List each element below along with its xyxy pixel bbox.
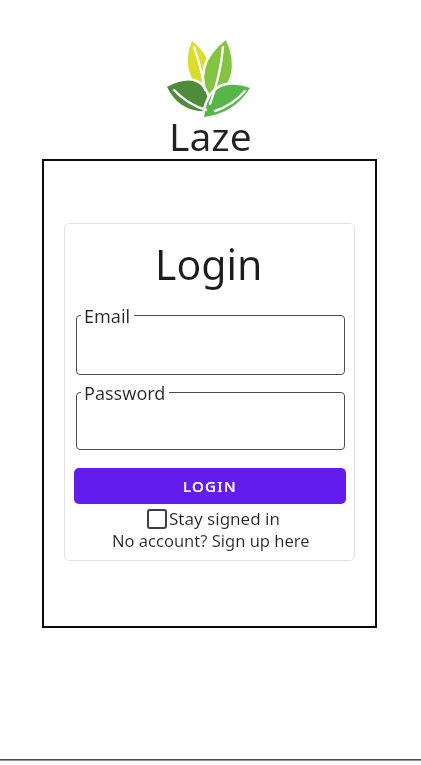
button[interactable]: Stay signed in xyxy=(147,507,280,530)
staticText: No account? Sign up here xyxy=(112,529,310,551)
staticText: Login xyxy=(155,236,263,292)
staticText: Stay signed in xyxy=(169,507,280,530)
staticText: Email xyxy=(84,304,131,329)
button[interactable] xyxy=(76,315,345,375)
button[interactable] xyxy=(76,392,345,450)
staticText: Laze xyxy=(169,109,252,162)
button[interactable]: No account? Sign up here xyxy=(112,529,310,551)
staticText: LOGIN xyxy=(183,476,237,496)
staticText: Password xyxy=(84,381,166,406)
button[interactable]: LOGIN xyxy=(74,468,346,504)
